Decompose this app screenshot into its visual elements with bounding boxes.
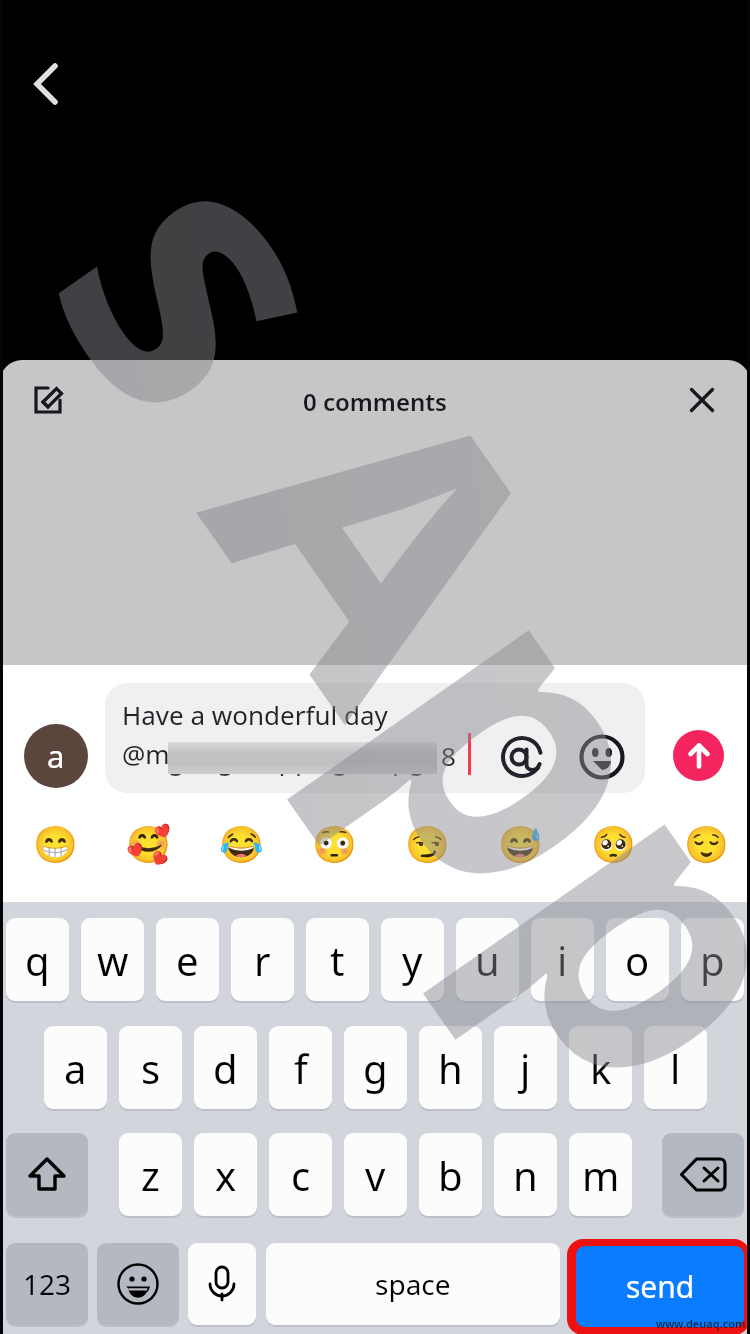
button[interactable]: i	[531, 918, 594, 1001]
button[interactable]: p	[681, 918, 744, 1001]
button[interactable]: y	[381, 918, 444, 1001]
button[interactable]: t	[306, 918, 369, 1001]
staticText: w	[97, 933, 129, 987]
staticText: Have a wonderful day	[122, 697, 388, 732]
button[interactable]: h	[419, 1026, 482, 1109]
staticText: 😅	[498, 824, 542, 866]
button[interactable]: Have a wonderful day	[105, 683, 645, 793]
staticText: l	[670, 1041, 681, 1095]
button[interactable]: a	[24, 724, 88, 788]
staticText: o	[625, 933, 650, 987]
staticText: 0 comments	[303, 385, 447, 418]
button[interactable]: Post comment	[673, 730, 724, 781]
staticText: 🥺	[591, 824, 635, 866]
staticText: 8	[441, 738, 456, 773]
button[interactable]: f	[269, 1026, 332, 1109]
staticText: y	[402, 933, 423, 987]
staticText: s	[141, 1041, 161, 1095]
button[interactable]: space	[266, 1243, 560, 1325]
button[interactable]: 😁	[33, 823, 77, 867]
staticText: 123	[23, 1265, 72, 1303]
staticText: @m	[122, 736, 170, 771]
button[interactable]: 123	[6, 1243, 88, 1325]
button[interactable]: j	[494, 1026, 557, 1109]
staticText: g	[363, 1041, 388, 1095]
button[interactable]: n	[494, 1133, 557, 1216]
staticText: h	[438, 1041, 463, 1095]
button[interactable]: s	[119, 1026, 182, 1109]
staticText: google.apps.groupg	[168, 740, 426, 777]
button[interactable]: k	[569, 1026, 632, 1109]
button[interactable]: 🥺	[591, 823, 635, 867]
button[interactable]: u	[456, 918, 519, 1001]
button[interactable]: m	[569, 1133, 632, 1216]
staticText: i	[557, 933, 568, 987]
staticText: 😏	[405, 824, 449, 866]
button[interactable]: o	[606, 918, 669, 1001]
staticText: www.deuaq.com	[656, 1316, 746, 1331]
staticText: j	[520, 1041, 531, 1095]
staticText: d	[213, 1041, 238, 1095]
button[interactable]: d	[194, 1026, 257, 1109]
staticText: 😁	[33, 824, 77, 866]
staticText: t	[330, 933, 345, 987]
staticText: p	[700, 933, 725, 987]
button[interactable]: v	[344, 1133, 407, 1216]
button[interactable]: w	[81, 918, 144, 1001]
staticText: r	[254, 933, 271, 987]
button[interactable]: Shift	[6, 1133, 88, 1216]
staticText: send	[626, 1266, 695, 1307]
staticText: f	[294, 1041, 308, 1095]
button[interactable]: b	[419, 1133, 482, 1216]
button[interactable]: x	[194, 1133, 257, 1216]
button[interactable]: Write a comment	[22, 374, 74, 426]
button[interactable]: 😳	[312, 823, 356, 867]
button[interactable]: Close	[676, 374, 728, 426]
staticText: c	[291, 1148, 311, 1202]
staticText: space	[375, 1265, 451, 1303]
staticText: q	[25, 933, 50, 987]
button[interactable]: Emoji keyboard	[97, 1243, 179, 1325]
staticText: u	[475, 933, 500, 987]
button[interactable]: Back	[16, 54, 76, 114]
button[interactable]: 🥰	[126, 823, 170, 867]
button[interactable]: 😂	[219, 823, 263, 867]
staticText: k	[590, 1041, 612, 1095]
staticText: 😌	[684, 824, 728, 866]
button[interactable]: r	[231, 918, 294, 1001]
button[interactable]: send	[576, 1246, 744, 1327]
button[interactable]: Add emoji	[579, 734, 625, 780]
button[interactable]: g	[344, 1026, 407, 1109]
staticText: 🥰	[126, 824, 170, 866]
staticText: m	[582, 1148, 620, 1202]
button[interactable]: Backspace	[662, 1133, 744, 1216]
button[interactable]: 😏	[405, 823, 449, 867]
staticText: e	[176, 933, 199, 987]
staticText: x	[215, 1148, 237, 1202]
staticText: 😂	[219, 824, 263, 866]
button[interactable]: Dictate	[188, 1243, 256, 1325]
staticText: a	[47, 735, 65, 777]
staticText: v	[365, 1148, 386, 1202]
button[interactable]: a	[44, 1026, 107, 1109]
staticText: a	[64, 1041, 87, 1095]
button[interactable]: e	[156, 918, 219, 1001]
button[interactable]: l	[644, 1026, 707, 1109]
button[interactable]: 😌	[684, 823, 728, 867]
staticText: z	[141, 1148, 160, 1202]
button[interactable]: 😅	[498, 823, 542, 867]
staticText: b	[438, 1148, 463, 1202]
button[interactable]: z	[119, 1133, 182, 1216]
button[interactable]: q	[6, 918, 69, 1001]
staticText: 😳	[312, 824, 356, 866]
button[interactable]: c	[269, 1133, 332, 1216]
staticText: n	[513, 1148, 538, 1202]
button[interactable]: Mention someone	[499, 734, 545, 780]
